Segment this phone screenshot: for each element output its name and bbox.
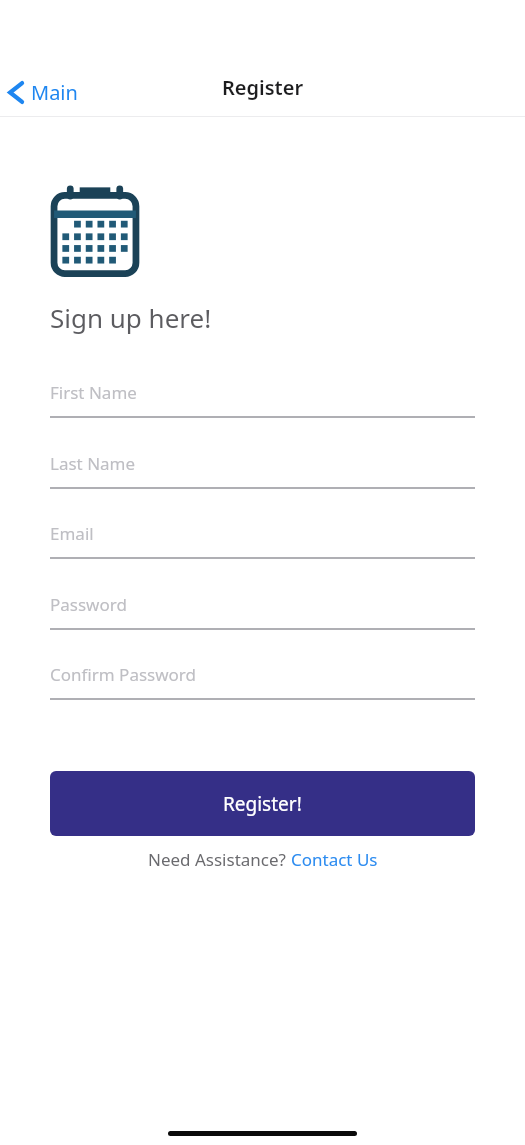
- button[interactable]: Email: [50, 515, 475, 559]
- staticText: Register!: [223, 791, 302, 817]
- staticText: First Name: [50, 381, 137, 404]
- staticText: Main: [31, 79, 78, 106]
- button[interactable]: Register!: [50, 771, 475, 836]
- button[interactable]: Last Name: [50, 445, 475, 489]
- button[interactable]: Contact Us: [291, 848, 378, 871]
- staticText: Register: [222, 74, 304, 101]
- staticText: Need Assistance?: [148, 848, 291, 871]
- staticText: Email: [50, 522, 94, 545]
- button[interactable]: Password: [50, 586, 475, 630]
- staticText: Sign up here!: [50, 300, 212, 335]
- staticText: Confirm Password: [50, 663, 196, 686]
- staticText: Password: [50, 593, 127, 616]
- button[interactable]: Confirm Password: [50, 656, 475, 700]
- staticText: Last Name: [50, 452, 136, 475]
- other: Calendar: [50, 185, 140, 275]
- button[interactable]: Main: [0, 75, 88, 110]
- button[interactable]: First Name: [50, 374, 475, 418]
